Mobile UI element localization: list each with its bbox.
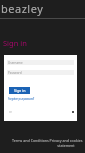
staticText: Username	[8, 61, 23, 65]
button[interactable]: Password	[7, 70, 74, 75]
button[interactable]: Language	[71, 110, 74, 113]
staticText: Privacy and cookies statement	[49, 138, 83, 148]
staticText: Sign in	[14, 88, 26, 93]
staticText: Password	[8, 71, 22, 75]
button[interactable]: en	[9, 110, 13, 114]
button[interactable]: Privacy and cookies statement	[49, 138, 83, 148]
button[interactable]: Forgotten your password?	[8, 97, 34, 101]
button[interactable]: Username	[7, 60, 74, 65]
staticText: Sign in	[3, 38, 27, 48]
button[interactable]: Terms and Conditions	[12, 138, 49, 143]
button[interactable]: beazley	[1, 1, 44, 16]
button[interactable]: Sign in	[9, 87, 30, 94]
